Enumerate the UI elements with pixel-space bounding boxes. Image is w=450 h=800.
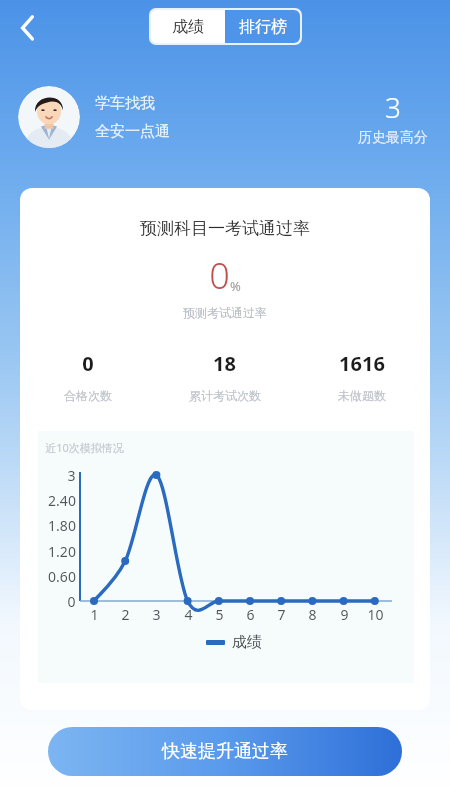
staticText: 排行榜 [239, 17, 287, 37]
staticText: 合格次数 [64, 388, 112, 403]
staticText: 10 [367, 605, 384, 624]
staticText: % [230, 277, 241, 295]
staticText: 0 [209, 251, 230, 300]
staticText: 预测考试通过率 [183, 305, 267, 320]
staticText: 5 [215, 605, 224, 624]
staticText: 1.20 [48, 542, 76, 561]
staticText: 3 [67, 466, 76, 485]
button[interactable]: Back [4, 5, 48, 49]
staticText: 累计考试次数 [189, 388, 261, 403]
staticText: 学车找我 [95, 94, 155, 113]
staticText: 成绩 [172, 17, 204, 37]
staticText: 未做题数 [338, 388, 386, 403]
button[interactable]: 成绩 [151, 10, 225, 43]
staticText: 2 [121, 605, 130, 624]
button[interactable]: 0 [20, 350, 156, 403]
staticText: 3 [152, 605, 161, 624]
staticText: 0 [82, 350, 94, 377]
staticText: 4 [184, 605, 193, 624]
button[interactable]: 18 [156, 350, 293, 403]
staticText: 成绩 [232, 633, 262, 652]
staticText: 7 [277, 605, 286, 624]
staticText: 2.40 [48, 491, 76, 510]
staticText: 全安一点通 [95, 122, 170, 141]
staticText: 0.60 [48, 567, 76, 586]
staticText: 18 [213, 350, 236, 377]
staticText: 近10次模拟情况 [45, 440, 124, 455]
staticText: 历史最高分 [358, 129, 428, 147]
button[interactable]: 快速提升通过率 [48, 727, 402, 776]
staticText: 8 [308, 605, 317, 624]
button[interactable]: 排行榜 [225, 10, 300, 43]
staticText: 9 [340, 605, 349, 624]
staticText: 1 [90, 605, 99, 624]
staticText: 快速提升通过率 [162, 740, 288, 763]
staticText: 预测科目一考试通过率 [140, 218, 310, 239]
staticText: 1.80 [48, 516, 76, 535]
staticText: 3 [385, 88, 401, 126]
staticText: 1616 [339, 350, 385, 377]
staticText: 0 [67, 592, 76, 611]
button[interactable]: 1616 [293, 350, 430, 403]
staticText: 6 [246, 605, 255, 624]
